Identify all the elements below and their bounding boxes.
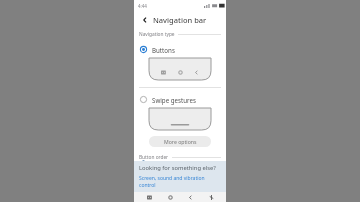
button[interactable]: Back xyxy=(139,14,151,26)
button[interactable]: Screenshot xyxy=(206,192,216,202)
button[interactable]: Screen, sound and vibration control xyxy=(139,175,221,189)
staticText: Buttons xyxy=(152,46,175,54)
staticText: Navigation bar xyxy=(153,15,207,25)
button[interactable]: Buttons xyxy=(134,43,226,56)
staticText: Navigation type xyxy=(139,31,175,38)
staticText: Screen, sound and vibration control xyxy=(139,175,221,189)
button[interactable]: Home xyxy=(165,192,175,202)
staticText: Looking for something else? xyxy=(139,164,216,172)
button[interactable]: Back xyxy=(185,192,195,202)
staticText: Swipe gestures xyxy=(152,96,196,104)
staticText: 4:44 xyxy=(138,3,147,9)
staticText: More options xyxy=(164,138,197,145)
button[interactable]: Swipe gestures xyxy=(134,93,226,106)
button[interactable]: More options xyxy=(149,136,211,147)
staticText: Button order xyxy=(139,154,169,161)
button[interactable]: Recents xyxy=(144,192,154,202)
